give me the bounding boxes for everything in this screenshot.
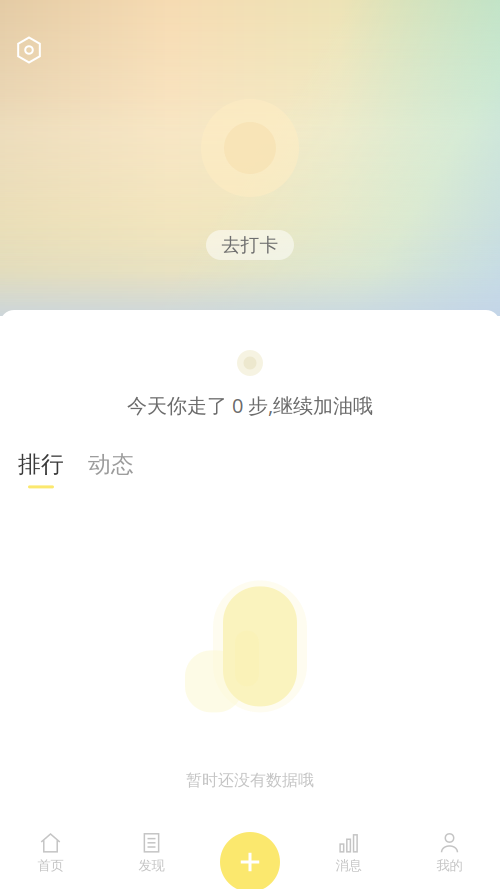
- button[interactable]: Add: [214, 826, 286, 889]
- staticText: 暂时还没有数据哦: [186, 770, 314, 790]
- button[interactable]: 消息: [298, 822, 399, 884]
- staticText: 去打卡: [221, 233, 278, 256]
- button[interactable]: 我的: [399, 822, 500, 884]
- staticText: 排行: [18, 451, 64, 478]
- staticText: 发现: [138, 857, 164, 874]
- staticText: 动态: [88, 451, 134, 478]
- button[interactable]: 去打卡: [206, 230, 294, 260]
- staticText: 我的: [436, 857, 462, 874]
- button[interactable]: 首页: [0, 822, 101, 884]
- staticText: 首页: [37, 857, 63, 874]
- button[interactable]: Settings: [8, 29, 50, 71]
- staticText: 消息: [335, 857, 361, 874]
- button[interactable]: 排行: [18, 451, 64, 488]
- staticText: 今天你走了 0 步,继续加油哦: [127, 392, 373, 419]
- button[interactable]: 动态: [88, 451, 134, 488]
- button[interactable]: 发现: [101, 822, 202, 884]
